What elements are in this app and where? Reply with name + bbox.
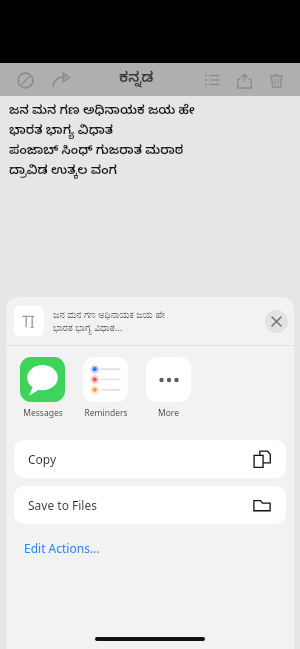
staticText: Copy — [28, 451, 57, 467]
button[interactable]: Share — [46, 65, 76, 95]
button[interactable]: Settings — [10, 65, 40, 95]
staticText: Save to Files — [28, 497, 97, 513]
button[interactable]: Reminders — [83, 357, 128, 419]
button[interactable]: List — [198, 66, 226, 94]
staticText: ಪಂಜಾಬ್ ಸಿಂಧ್ ಗುಜರಾತ ಮರಾಠ — [9, 141, 184, 161]
button[interactable]: Export — [230, 66, 258, 94]
button[interactable]: Close — [265, 310, 288, 333]
staticText: ಜನ ಮನ ಗಣ ಅಧಿನಾಯಕ ಜಯ ಹೇ — [53, 308, 165, 321]
button[interactable]: Delete — [262, 66, 290, 94]
staticText: ಭಾರತ ಭಾಗ್ಯ ವಿಧಾತ... — [53, 321, 123, 334]
staticText: ದ್ರಾವಿಡ ಉತ್ಕಲ ವಂಗ — [9, 161, 118, 181]
button[interactable]: More — [146, 357, 191, 419]
button[interactable]: Save to Files — [14, 486, 286, 524]
staticText: ಜನ ಮನ ಗಣ ಅಧಿನಾಯಕ ಜಯ ಹೇ — [9, 101, 195, 121]
staticText: More — [158, 407, 179, 419]
staticText: ಕನ್ನಡ — [119, 70, 154, 90]
button[interactable]: Copy — [14, 440, 286, 478]
staticText: Reminders — [84, 407, 128, 419]
staticText: ಭಾರತ ಭಾಗ್ಯ ವಿಧಾತ — [9, 121, 114, 141]
staticText: Messages — [23, 407, 63, 419]
button[interactable]: Messages — [20, 357, 65, 419]
staticText: Edit Actions... — [24, 540, 100, 556]
button[interactable]: Edit Actions... — [20, 536, 104, 560]
